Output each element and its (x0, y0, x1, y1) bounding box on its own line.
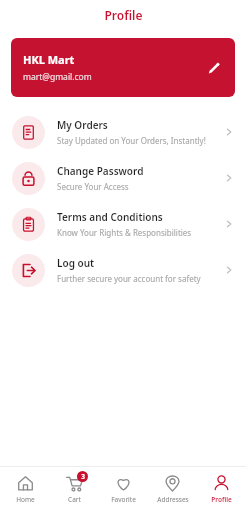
button[interactable]: Terms and Conditions (0, 201, 246, 247)
button[interactable]: 3 (50, 475, 99, 504)
staticText: Log out (57, 256, 95, 270)
button[interactable]: Home (0, 475, 50, 504)
staticText: Terms and Conditions (57, 210, 163, 224)
staticText: Secure Your Access (57, 181, 129, 192)
staticText: Know Your Rights & Responsibilities (57, 227, 192, 238)
staticText: 3 (81, 472, 85, 481)
button[interactable]: HKL Mart (11, 38, 235, 97)
staticText: Addresses (157, 495, 189, 504)
button[interactable]: Edit profile (201, 55, 227, 81)
staticText: Favorite (111, 495, 136, 504)
button[interactable]: My Orders (0, 109, 246, 155)
staticText: Cart (68, 495, 81, 504)
staticText: Further secure your account for safety (57, 273, 201, 284)
staticText: mart@gmail.com (23, 71, 92, 83)
staticText: Home (16, 495, 35, 504)
staticText: Change Password (57, 164, 144, 178)
staticText: Profile (211, 495, 232, 504)
button[interactable]: Profile (197, 475, 246, 504)
staticText: My Orders (57, 118, 108, 132)
button[interactable]: Log out (0, 247, 246, 293)
button[interactable]: Addresses (148, 475, 197, 504)
staticText: HKL Mart (23, 52, 75, 67)
staticText: Stay Updated on Your Orders, Instantly! (57, 135, 206, 146)
button[interactable]: Favorite (99, 475, 148, 504)
button[interactable]: Change Password (0, 155, 246, 201)
staticText: Profile (104, 7, 143, 23)
